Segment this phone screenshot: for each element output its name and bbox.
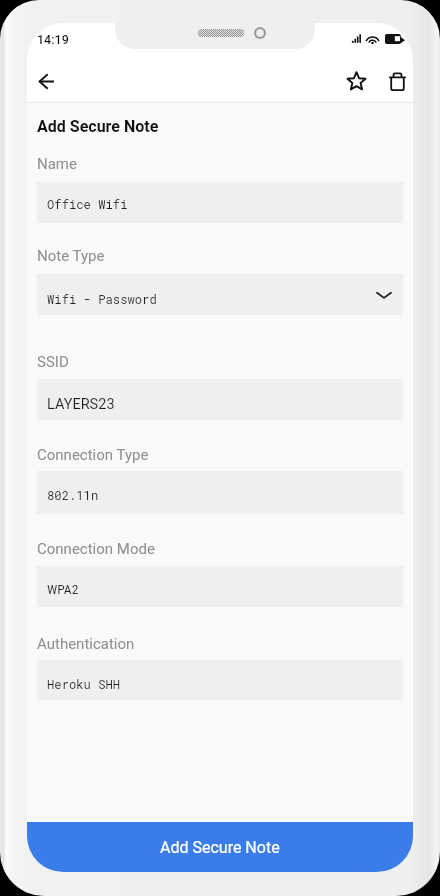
button[interactable]: Back — [30, 65, 63, 98]
staticText: Wifi - Password — [47, 291, 157, 307]
button[interactable]: Wifi - Password — [37, 274, 403, 315]
staticText: Add Secure Note — [160, 838, 280, 857]
button[interactable]: Favourite — [340, 64, 373, 97]
staticText: 802.11n — [47, 487, 99, 503]
staticText: 14:19 — [37, 32, 69, 47]
staticText: SSID — [37, 353, 69, 371]
staticText: Office Wifi — [47, 196, 128, 212]
staticText: WPA2 — [47, 581, 79, 597]
staticText: Connection Mode — [37, 540, 155, 558]
button[interactable]: Delete — [381, 65, 413, 98]
staticText: Connection Type — [37, 446, 149, 464]
staticText: LAYERS23 — [47, 396, 115, 413]
staticText: Add Secure Note — [37, 117, 159, 136]
button[interactable]: WPA2 — [37, 566, 403, 607]
button[interactable]: Office Wifi — [37, 182, 403, 223]
staticText: Authentication — [37, 635, 135, 653]
button[interactable]: 802.11n — [37, 471, 403, 514]
staticText: Note Type — [37, 247, 105, 265]
button[interactable]: Add Secure Note — [27, 822, 413, 872]
button[interactable]: LAYERS23 — [37, 379, 403, 420]
staticText: Heroku SHH — [47, 676, 121, 692]
button[interactable]: Heroku SHH — [37, 660, 403, 700]
staticText: Name — [37, 155, 77, 173]
